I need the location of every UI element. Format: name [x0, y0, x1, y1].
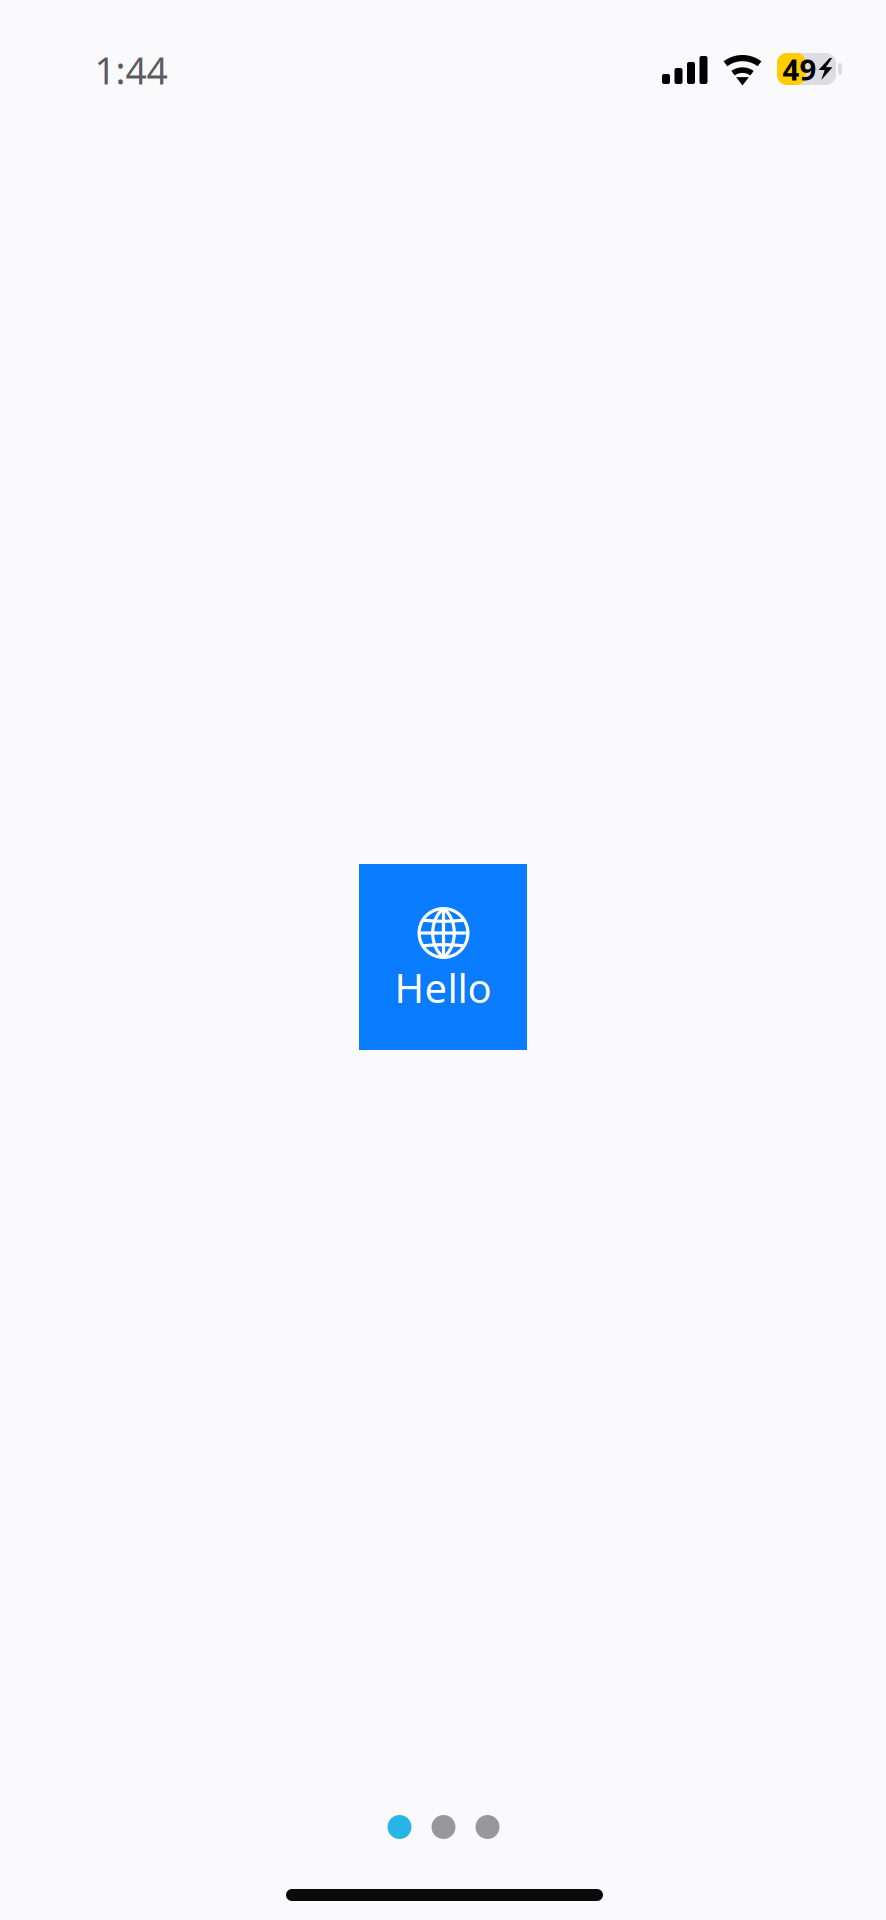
button[interactable]: Page 3 [475, 1815, 499, 1839]
staticText: 49 [782, 49, 816, 88]
button[interactable]: Hello [359, 864, 527, 1050]
button[interactable]: Page 2 [431, 1815, 455, 1839]
staticText: 1:44 [94, 45, 167, 95]
button[interactable]: Page 1, current page [387, 1815, 411, 1839]
staticText: Hello [394, 961, 491, 1014]
